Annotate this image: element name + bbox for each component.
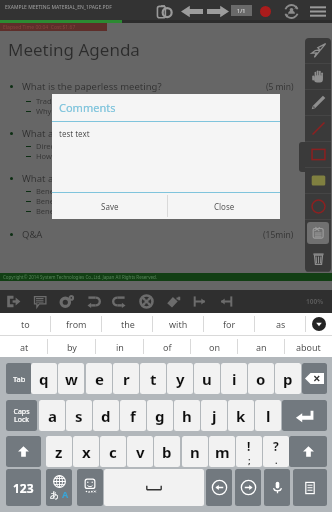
button[interactable]: g <box>147 400 173 431</box>
button[interactable]: 123 <box>6 469 41 506</box>
button[interactable]: Voice input <box>264 469 290 506</box>
button[interactable]: c <box>100 436 126 467</box>
button[interactable]: Pan <box>305 64 331 90</box>
button[interactable]: Previous page <box>179 2 204 20</box>
button[interactable]: Redo <box>106 290 132 313</box>
button[interactable]: as <box>255 313 306 335</box>
staticText: j <box>212 406 217 426</box>
button[interactable]: in <box>96 336 144 357</box>
button[interactable]: Space <box>104 469 204 506</box>
button[interactable]: Move cursor left <box>206 469 232 506</box>
button[interactable]: Shift <box>289 436 327 467</box>
button[interactable]: Change language <box>46 469 72 506</box>
staticText: a <box>48 406 57 426</box>
button[interactable]: Close <box>168 193 280 219</box>
button[interactable]: First page <box>186 290 212 313</box>
button[interactable]: Save <box>52 193 167 219</box>
staticText: p <box>283 369 293 389</box>
button[interactable]: Record <box>256 2 275 20</box>
button[interactable]: i <box>221 363 247 394</box>
button[interactable]: v <box>127 436 153 467</box>
button[interactable]: for <box>204 313 255 335</box>
button[interactable]: d <box>93 400 119 431</box>
staticText: (5 min) <box>266 81 294 93</box>
button[interactable]: the <box>102 313 153 335</box>
staticText: What are the merits? <box>22 127 115 140</box>
staticText: Copyright© 2014 System Technologies Co.,… <box>3 274 158 280</box>
button[interactable]: More suggestions <box>306 313 332 335</box>
button[interactable]: ! <box>236 436 262 467</box>
button[interactable]: an <box>238 336 285 357</box>
button[interactable]: t <box>140 363 166 394</box>
staticText: 1/1 <box>237 7 246 14</box>
button[interactable]: l <box>255 400 281 431</box>
button[interactable]: Keyboard settings <box>293 469 327 506</box>
button[interactable]: of <box>144 336 191 357</box>
button[interactable]: q <box>31 363 57 394</box>
staticText: k <box>236 406 246 426</box>
staticText: Meeting Agenda <box>8 38 140 61</box>
button[interactable]: Note <box>27 290 53 313</box>
button[interactable]: o <box>248 363 274 394</box>
button[interactable]: Undo <box>80 290 106 313</box>
staticText: 123 <box>13 480 34 496</box>
staticText: Benefit 3 <box>36 206 68 216</box>
button[interactable]: Exit <box>0 290 26 313</box>
button[interactable]: about <box>285 336 332 357</box>
staticText: about <box>296 341 321 353</box>
button[interactable]: Settings <box>53 290 79 313</box>
staticText: EXAMPLE MEETING MATERIAL_EN_1PAGE.PDF <box>5 4 112 11</box>
button[interactable]: a <box>39 400 65 431</box>
button[interactable]: Rectangle <box>305 142 331 168</box>
button[interactable]: 1/1 <box>231 5 252 16</box>
button[interactable]: Caps Lock <box>6 400 37 431</box>
button[interactable]: z <box>46 436 72 467</box>
button[interactable]: Colour <box>133 290 159 313</box>
button[interactable]: by <box>48 336 96 357</box>
button[interactable]: Pen <box>305 90 331 116</box>
button[interactable]: Sync <box>281 2 302 20</box>
button[interactable]: f <box>120 400 146 431</box>
button[interactable]: y <box>167 363 193 394</box>
staticText: b <box>162 442 172 462</box>
button[interactable]: Emoji <box>77 469 103 506</box>
button[interactable]: Backspace <box>302 363 327 394</box>
button[interactable]: Line <box>305 116 331 142</box>
button[interactable]: from <box>51 313 102 335</box>
button[interactable]: e <box>86 363 112 394</box>
button[interactable]: r <box>113 363 139 394</box>
button[interactable]: Next page <box>206 2 230 20</box>
button[interactable]: Delete <box>305 246 331 272</box>
button[interactable]: Select <box>305 38 331 64</box>
staticText: Benefit 2 <box>36 196 68 206</box>
button[interactable]: at <box>0 336 48 357</box>
button[interactable]: ? <box>263 436 289 467</box>
button[interactable]: Move cursor right <box>235 469 261 506</box>
button[interactable]: b <box>154 436 180 467</box>
button[interactable]: to <box>0 313 51 335</box>
button[interactable]: w <box>58 363 84 394</box>
button[interactable]: Fill colour <box>305 168 331 194</box>
button[interactable]: Collapse toolbar <box>299 142 307 172</box>
button[interactable]: u <box>194 363 220 394</box>
button[interactable]: x <box>73 436 99 467</box>
button[interactable]: Fill <box>160 290 186 313</box>
button[interactable]: Shift <box>6 436 41 467</box>
button[interactable]: Tab <box>6 363 32 394</box>
button[interactable]: Enter <box>282 400 327 431</box>
button[interactable]: m <box>209 436 235 467</box>
button[interactable]: h <box>174 400 200 431</box>
button[interactable]: j <box>201 400 227 431</box>
button[interactable]: Last page <box>213 290 239 313</box>
button[interactable]: p <box>275 363 301 394</box>
button[interactable]: Camera <box>154 2 176 20</box>
button[interactable]: s <box>66 400 92 431</box>
staticText: c <box>109 442 117 462</box>
button[interactable]: k <box>228 400 254 431</box>
button[interactable]: Stamp <box>305 220 331 246</box>
button[interactable]: n <box>182 436 208 467</box>
button[interactable]: Ellipse <box>305 194 331 220</box>
button[interactable]: Menu <box>306 2 329 20</box>
button[interactable]: with <box>153 313 204 335</box>
button[interactable]: on <box>191 336 238 357</box>
